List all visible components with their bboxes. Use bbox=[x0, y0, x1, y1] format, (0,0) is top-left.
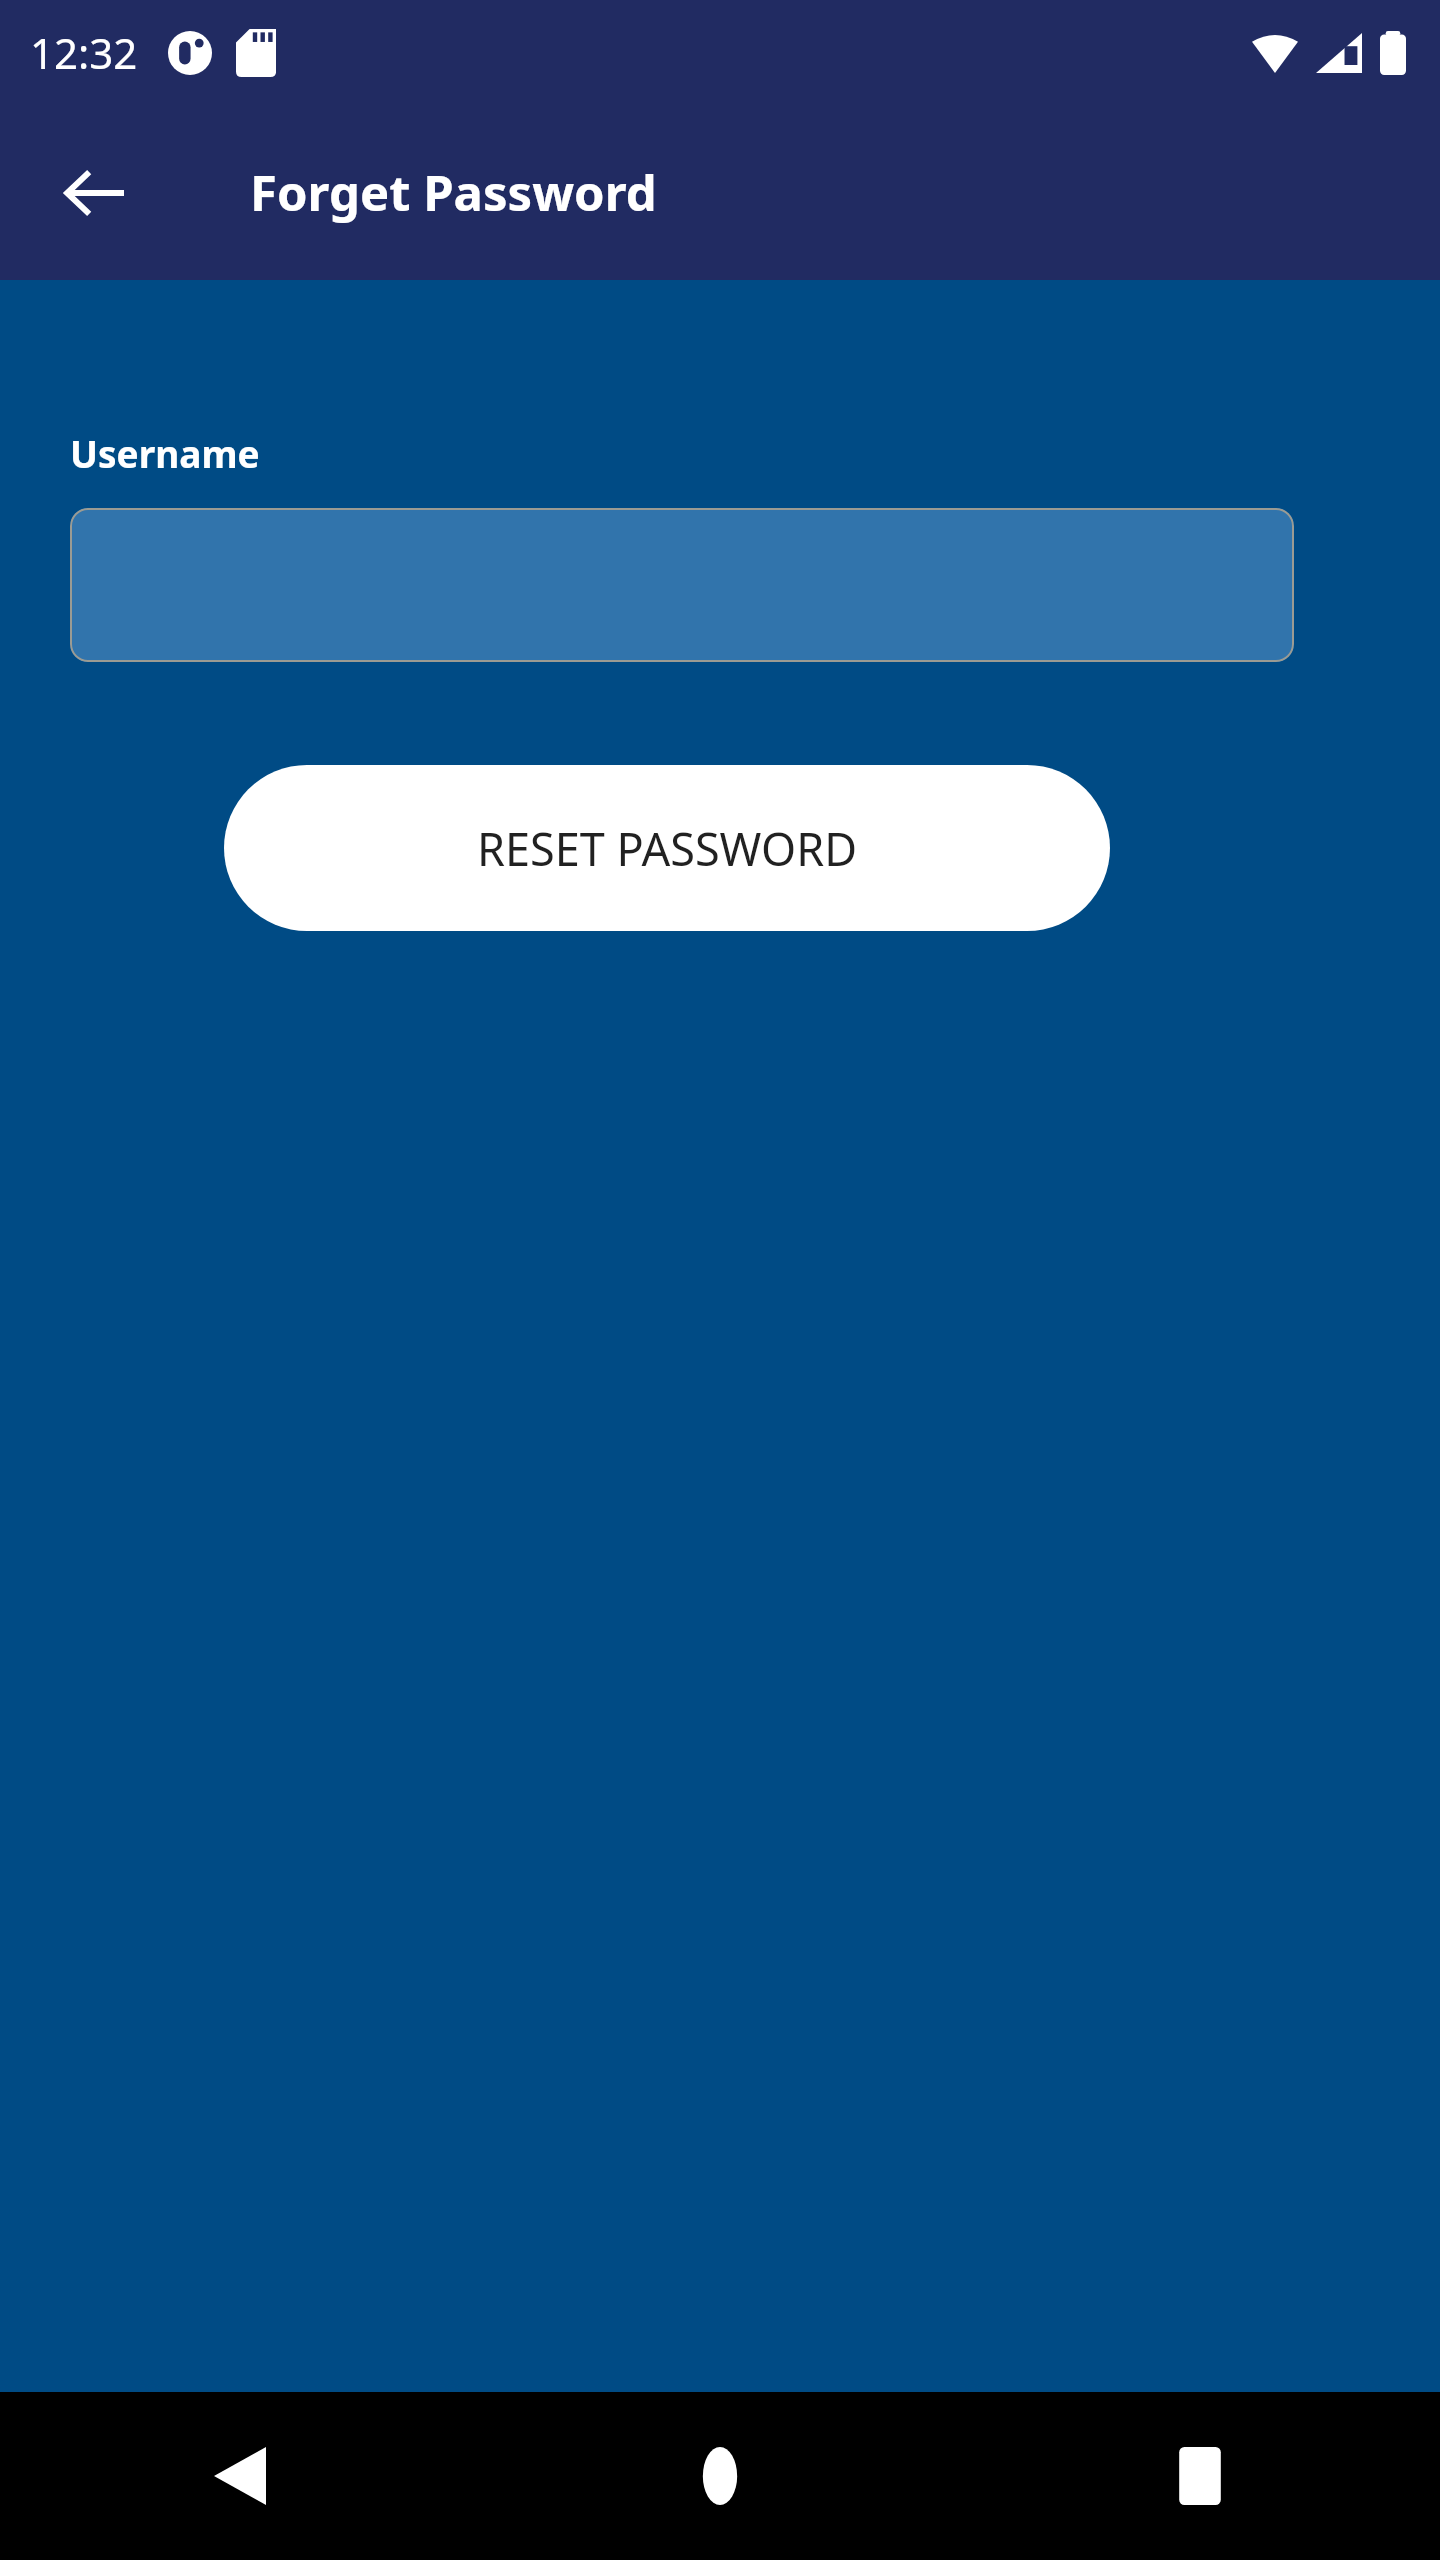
button[interactable]: RESET PASSWORD bbox=[224, 765, 1110, 931]
button[interactable]: Back bbox=[0, 2392, 480, 2560]
button[interactable]: Recent apps bbox=[960, 2392, 1440, 2560]
staticText: Username bbox=[70, 428, 260, 478]
staticText: Forget Password bbox=[250, 159, 657, 226]
staticText: 12:32 bbox=[30, 24, 138, 81]
button[interactable] bbox=[70, 508, 1294, 662]
button[interactable]: Home bbox=[480, 2392, 960, 2560]
staticText: RESET PASSWORD bbox=[477, 818, 857, 879]
button[interactable]: Back bbox=[27, 125, 163, 261]
